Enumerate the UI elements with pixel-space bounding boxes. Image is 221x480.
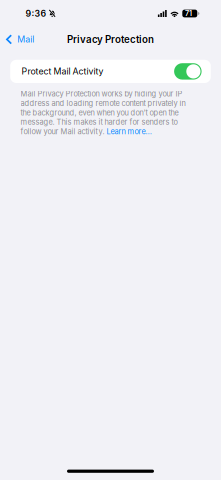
staticText: 9:36 — [25, 8, 46, 19]
staticText: Protect Mail Activity — [21, 66, 103, 77]
staticText: Mail — [17, 34, 34, 45]
staticText: Mail Privacy Protection works by hiding … — [21, 89, 186, 136]
button[interactable]: Protect Mail Activity — [10, 60, 211, 83]
staticText: Privacy Protection — [67, 33, 154, 45]
button[interactable]: Mail — [0, 29, 43, 50]
staticText: 71 — [185, 9, 192, 18]
